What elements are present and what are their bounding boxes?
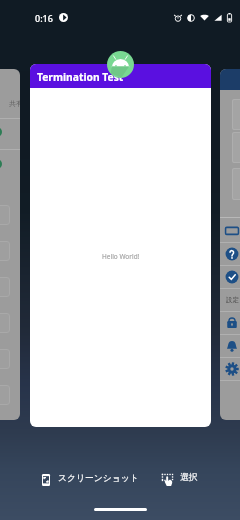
button[interactable]: スクリーンショット: [33, 467, 147, 489]
staticText: 設定: [226, 296, 239, 304]
staticText: 共有: [9, 99, 20, 108]
staticText: Termination Test: [37, 70, 124, 84]
staticText: 0:16: [35, 12, 53, 24]
button[interactable]: Termination Test: [30, 64, 211, 427]
button[interactable]: 設定: [220, 69, 240, 420]
staticText: スクリーンショット: [58, 473, 139, 484]
staticText: Hello World!: [102, 252, 140, 261]
button[interactable]: 選択: [153, 466, 206, 489]
button[interactable]: 共有: [0, 69, 20, 420]
staticText: 選択: [180, 472, 198, 483]
button[interactable]: Termination Test app icon: [107, 51, 134, 78]
